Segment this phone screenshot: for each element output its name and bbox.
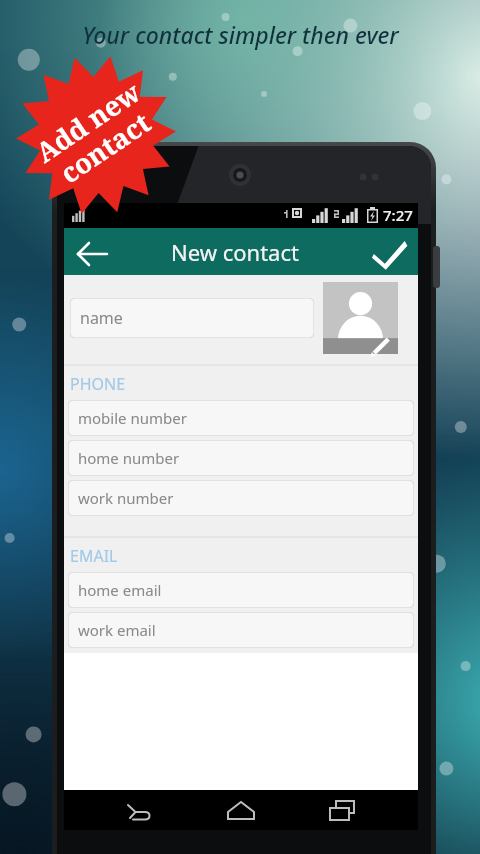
staticText: PHONE (70, 373, 126, 395)
button[interactable]: Save contact (366, 231, 412, 277)
button[interactable]: Add new contact (11, 58, 181, 212)
staticText: mobile number (78, 408, 187, 428)
button[interactable]: Recent apps (326, 794, 360, 828)
button[interactable]: name (70, 298, 314, 338)
button[interactable]: home email (68, 572, 414, 608)
staticText: home email (78, 580, 162, 600)
staticText: name (80, 307, 123, 329)
button[interactable]: work email (68, 612, 414, 648)
staticText: Your contact simpler then ever (82, 19, 399, 50)
staticText: New contact (171, 237, 299, 267)
button[interactable]: mobile number (68, 400, 414, 436)
staticText: work email (78, 620, 156, 640)
button[interactable]: home number (68, 440, 414, 476)
button[interactable]: Back (122, 794, 156, 828)
staticText: 7:27 (383, 205, 413, 225)
button[interactable]: Home (224, 794, 258, 828)
staticText: EMAIL (70, 545, 118, 567)
button[interactable]: work number (68, 480, 414, 516)
staticText: home number (78, 448, 180, 468)
staticText: Add new contact (28, 73, 165, 196)
button[interactable]: Contact photo (323, 282, 398, 354)
staticText: work number (78, 488, 174, 508)
button[interactable]: Back (70, 232, 114, 276)
